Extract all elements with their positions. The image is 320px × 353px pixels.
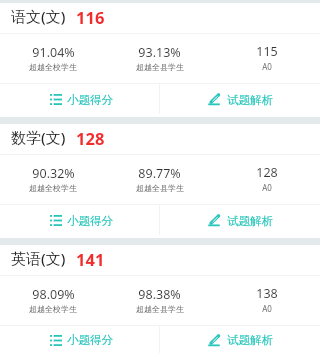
staticText: 93.13% <box>138 44 181 61</box>
staticText: 英语(文) <box>11 248 66 268</box>
staticText: 超越全校学生 <box>29 183 77 193</box>
staticText: 小题得分 <box>67 93 113 107</box>
button[interactable]: 试题解析 <box>160 84 320 117</box>
staticText: 数学(文) <box>11 127 66 147</box>
staticText: 98.38% <box>138 286 181 303</box>
staticText: A0 <box>262 61 272 72</box>
staticText: A0 <box>262 182 272 193</box>
button[interactable]: 试题解析 <box>160 326 320 353</box>
button[interactable]: 试题解析 <box>160 205 320 238</box>
staticText: 138 <box>256 285 278 302</box>
staticText: 115 <box>256 43 278 60</box>
staticText: 90.32% <box>32 165 75 182</box>
staticText: 超越全校学生 <box>29 304 77 314</box>
staticText: 试题解析 <box>227 93 273 107</box>
button[interactable]: 小题得分 <box>0 326 159 353</box>
staticText: 小题得分 <box>67 214 113 228</box>
staticText: 小题得分 <box>67 333 113 347</box>
staticText: 超越全县学生 <box>136 62 184 72</box>
staticText: A0 <box>262 303 272 314</box>
staticText: 试题解析 <box>227 333 273 347</box>
button[interactable]: 小题得分 <box>0 205 159 238</box>
button[interactable]: 小题得分 <box>0 84 159 117</box>
staticText: 141 <box>76 248 105 270</box>
staticText: 116 <box>76 6 105 28</box>
staticText: 超越全县学生 <box>136 183 184 193</box>
staticText: 超越全校学生 <box>29 62 77 72</box>
staticText: 语文(文) <box>11 6 66 26</box>
staticText: 超越全县学生 <box>136 304 184 314</box>
staticText: 98.09% <box>32 286 75 303</box>
staticText: 128 <box>76 127 105 149</box>
staticText: 91.04% <box>32 44 75 61</box>
staticText: 128 <box>256 164 278 181</box>
staticText: 89.77% <box>138 165 181 182</box>
staticText: 试题解析 <box>227 214 273 228</box>
